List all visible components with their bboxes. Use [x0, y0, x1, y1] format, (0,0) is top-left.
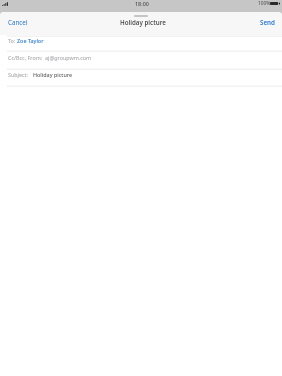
button[interactable]: Cc/Bcc, From:	[0, 49, 282, 64]
staticText: Zoe Taylor	[17, 37, 44, 44]
button[interactable]: To:	[0, 32, 282, 47]
staticText: 100%	[258, 0, 271, 7]
staticText: aj@groupwm.com	[45, 54, 92, 61]
staticText: Cc/Bcc, From:	[8, 54, 43, 61]
button[interactable]: Subject:	[0, 66, 282, 81]
button[interactable]: Send	[254, 15, 282, 29]
staticText: Holiday picture	[120, 18, 166, 26]
staticText: Cancel	[8, 18, 28, 26]
other: Battery full	[270, 2, 280, 5]
staticText: Subject:	[8, 71, 29, 78]
staticText: To:	[8, 37, 16, 44]
staticText: Holiday picture	[33, 71, 73, 78]
staticText: Send	[260, 18, 275, 26]
staticText: 18:00	[135, 0, 149, 7]
other: Signal strength	[2, 2, 8, 6]
button[interactable]: Cancel	[0, 15, 34, 29]
